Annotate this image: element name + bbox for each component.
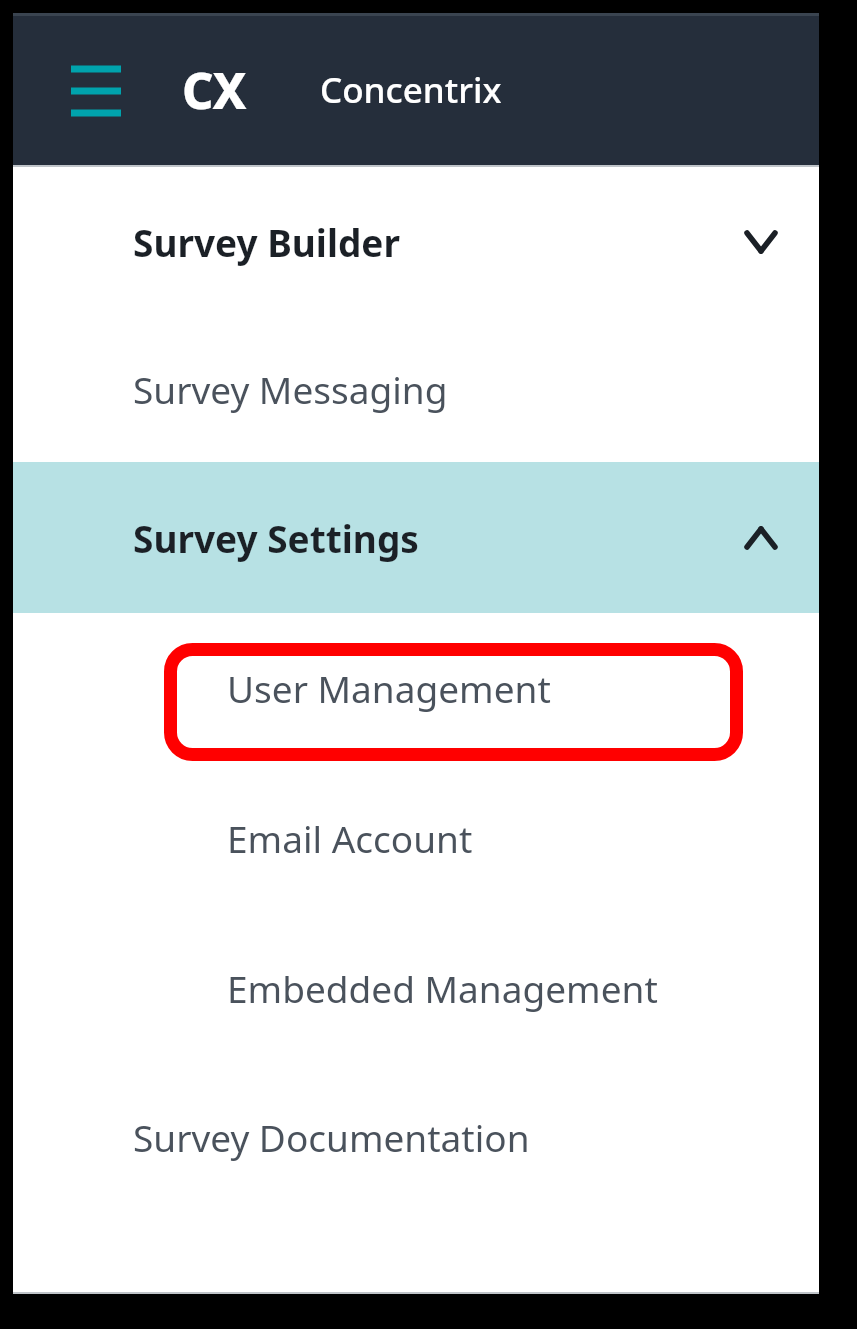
button[interactable]: Survey Builder (13, 167, 819, 316)
button[interactable]: Survey Documentation (13, 1063, 819, 1211)
button[interactable]: Email Account (13, 763, 819, 913)
staticText: Survey Settings (133, 513, 419, 563)
button[interactable]: Concentrix CX home (182, 51, 502, 129)
button[interactable]: Open navigation menu (46, 53, 126, 129)
staticText: Concentrix (320, 66, 502, 114)
button[interactable]: User Management (13, 613, 819, 763)
staticText: User Management (227, 663, 551, 713)
staticText: Survey Documentation (133, 1112, 530, 1162)
staticText: Email Account (227, 813, 473, 863)
staticText: Survey Messaging (133, 364, 448, 414)
button[interactable]: Survey Messaging (13, 316, 819, 462)
staticText: Survey Builder (133, 217, 400, 267)
button[interactable]: Embedded Management (13, 913, 819, 1063)
staticText: Embedded Management (227, 963, 658, 1013)
button[interactable]: Survey Settings (13, 462, 819, 613)
staticText: CX (182, 57, 246, 124)
